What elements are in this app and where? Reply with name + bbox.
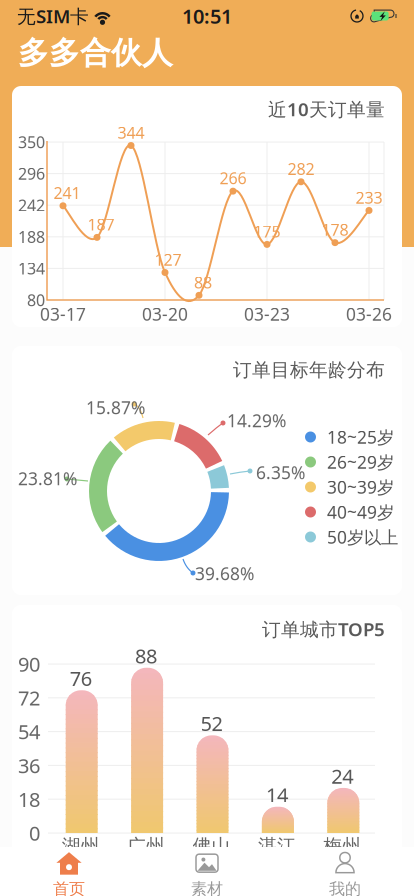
- staticText: 订单城市TOP5: [262, 617, 385, 641]
- staticText: 6.35%: [256, 461, 305, 484]
- staticText: 03-26: [346, 302, 392, 325]
- staticText: 233: [355, 187, 382, 208]
- staticText: 344: [117, 122, 144, 143]
- staticText: 40~49岁: [327, 500, 394, 523]
- staticText: 76: [70, 665, 92, 692]
- staticText: 242: [18, 195, 45, 216]
- staticText: 187: [87, 214, 114, 235]
- staticText: 多多合伙人: [18, 34, 173, 72]
- staticText: 湖州: [62, 834, 100, 857]
- staticText: 订单目标年龄分布: [233, 358, 385, 381]
- staticText: 14: [266, 781, 288, 808]
- staticText: 178: [321, 219, 348, 240]
- staticText: 175: [253, 221, 280, 242]
- staticText: 54: [18, 718, 40, 745]
- staticText: 88: [135, 642, 157, 669]
- staticText: 10:51: [182, 3, 232, 29]
- staticText: 72: [18, 684, 40, 711]
- staticText: 36: [18, 752, 40, 779]
- staticText: 我的: [329, 879, 361, 896]
- staticText: 0: [29, 820, 40, 846]
- staticText: 26~29岁: [327, 450, 394, 473]
- staticText: 296: [18, 163, 45, 184]
- staticText: 03-23: [244, 302, 290, 325]
- button[interactable]: 素材: [138, 845, 276, 896]
- staticText: 30~39岁: [327, 475, 394, 498]
- staticText: 18~25岁: [327, 425, 394, 448]
- button[interactable]: 我的: [276, 845, 414, 896]
- staticText: 350: [18, 131, 45, 153]
- staticText: 80: [27, 289, 45, 311]
- staticText: 90: [18, 651, 40, 677]
- staticText: 15.87%: [86, 396, 145, 419]
- staticText: 素材: [191, 879, 223, 896]
- staticText: 14.29%: [227, 409, 286, 432]
- staticText: 无SIM卡: [17, 4, 89, 28]
- button[interactable]: 首页: [0, 845, 138, 896]
- staticText: 23.81%: [18, 467, 77, 490]
- staticText: 52: [200, 710, 222, 737]
- staticText: 湛江: [258, 834, 296, 857]
- staticText: 134: [18, 258, 45, 279]
- staticText: 241: [53, 182, 80, 203]
- staticText: 近10天订单量: [268, 97, 385, 121]
- staticText: 282: [287, 158, 314, 179]
- staticText: 03-17: [40, 302, 86, 325]
- staticText: 39.68%: [195, 562, 254, 585]
- staticText: 50岁以上: [327, 525, 398, 548]
- staticText: 广州: [127, 834, 165, 857]
- staticText: 佛山: [192, 834, 230, 857]
- staticText: 梅州: [323, 834, 361, 857]
- staticText: 88: [194, 272, 212, 293]
- staticText: 266: [219, 167, 246, 189]
- staticText: 127: [154, 249, 181, 270]
- staticText: 首页: [53, 879, 85, 896]
- staticText: 18: [18, 786, 40, 812]
- staticText: 24: [331, 763, 353, 789]
- staticText: 188: [18, 226, 45, 247]
- staticText: 03-20: [142, 302, 188, 325]
